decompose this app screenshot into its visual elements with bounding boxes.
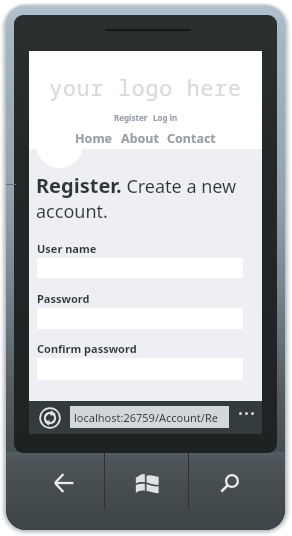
button[interactable]: More options (233, 401, 259, 425)
button[interactable]: Log in (153, 112, 178, 123)
button[interactable]: Back (6, 453, 104, 515)
staticText: Register. Create a new account. (36, 172, 248, 224)
button[interactable]: Register (114, 112, 148, 123)
button[interactable]: About (121, 130, 159, 147)
staticText: localhost:26759/Account/Re (74, 410, 218, 425)
staticText: User name (37, 241, 97, 256)
staticText: Confirm password (37, 341, 137, 356)
button[interactable]: localhost:26759/Account/Re (70, 406, 229, 428)
staticText: Password (37, 291, 90, 306)
button[interactable]: Contact (167, 130, 216, 147)
button[interactable]: Start (104, 453, 188, 515)
button[interactable]: Refresh (39, 407, 61, 429)
button[interactable]: Home (75, 130, 113, 147)
button[interactable]: Search (188, 453, 285, 515)
staticText: your logo here (29, 73, 262, 102)
